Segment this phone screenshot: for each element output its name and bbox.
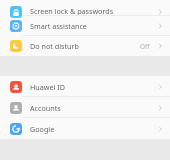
staticText: Huawei ID bbox=[30, 82, 156, 92]
staticText: Off bbox=[140, 42, 150, 51]
button[interactable]: Screen lock & passwords bbox=[0, 0, 170, 16]
button[interactable]: Do not disturb bbox=[0, 36, 170, 56]
button[interactable]: Accounts bbox=[0, 97, 170, 118]
staticText: Do not disturb bbox=[30, 41, 140, 51]
button[interactable]: Smart assistance bbox=[0, 16, 170, 36]
button[interactable]: Google bbox=[0, 118, 170, 139]
staticText: Smart assistance bbox=[30, 21, 156, 31]
staticText: Screen lock & passwords bbox=[30, 6, 156, 16]
button[interactable]: Huawei ID bbox=[0, 76, 170, 97]
staticText: Accounts bbox=[30, 103, 156, 113]
staticText: Google bbox=[30, 124, 156, 134]
